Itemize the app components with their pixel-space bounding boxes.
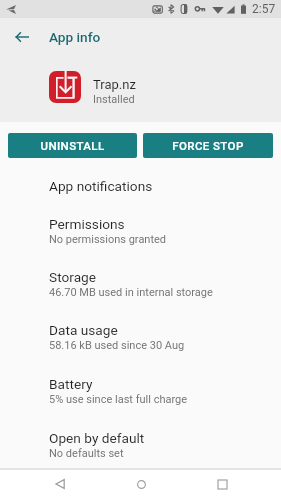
staticText: 46.70 MB used in internal storage (49, 286, 213, 299)
staticText: FORCE STOP (172, 139, 244, 152)
staticText: No permissions granted (49, 233, 167, 246)
staticText: Permissions (49, 216, 125, 232)
staticText: 5% use since last full charge (49, 393, 188, 406)
staticText: 58.16 kB used since 30 Aug (49, 339, 185, 352)
button[interactable]: UNINSTALL (8, 133, 137, 158)
button[interactable]: Home (123, 469, 159, 499)
staticText: Storage (49, 269, 97, 285)
staticText: 2:57 (252, 2, 276, 16)
button[interactable]: App notifications (0, 167, 281, 205)
button[interactable]: Storage (0, 257, 281, 310)
button[interactable]: FORCE STOP (143, 133, 273, 158)
staticText: No defaults set (49, 447, 124, 460)
button[interactable]: Permissions (0, 204, 281, 257)
staticText: App info (49, 29, 101, 45)
staticText: App notifications (49, 178, 153, 194)
button[interactable]: Recent apps (204, 469, 240, 499)
staticText: UNINSTALL (40, 139, 105, 152)
button[interactable]: Battery (0, 364, 281, 417)
staticText: Open by default (49, 430, 145, 446)
staticText: Installed (93, 93, 135, 106)
staticText: Data usage (49, 322, 118, 338)
button[interactable]: Open by default (0, 418, 281, 471)
button[interactable]: Back (42, 469, 78, 499)
button[interactable]: Navigate up (0, 18, 43, 56)
staticText: Battery (49, 376, 93, 392)
button[interactable]: Data usage (0, 310, 281, 363)
staticText: Trap.nz (93, 77, 136, 92)
